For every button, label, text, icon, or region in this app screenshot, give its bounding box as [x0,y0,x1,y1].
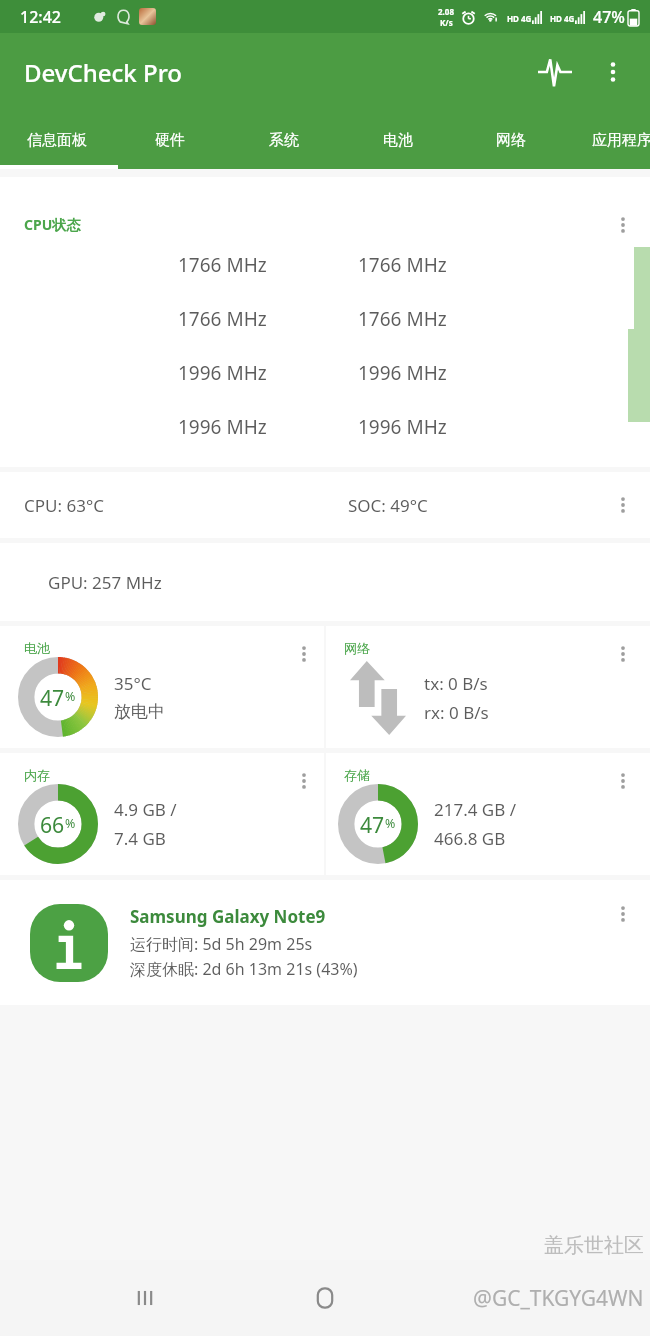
button[interactable]: Home [296,1269,354,1327]
staticText: HD [507,13,519,24]
staticText: 217.4 GB / [434,798,517,821]
staticText: % [65,688,76,705]
staticText: 1996 MHz [358,414,447,440]
button[interactable]: Device options [605,896,641,932]
staticText: 466.8 GB [434,827,506,850]
button[interactable]: 电池 [0,626,324,748]
staticText: 网络 [344,640,370,656]
staticText: 1996 MHz [178,360,267,386]
button[interactable]: Battery options [286,636,322,672]
staticText: 47 [40,683,65,712]
staticText: 运行时间: 5d 5h 29m 25s [130,933,313,955]
button[interactable]: GPU: 257 MHz [0,543,650,621]
staticText: 1766 MHz [178,306,267,332]
button[interactable]: 硬件 [110,111,230,169]
staticText: 4.9 GB / [114,798,177,821]
staticText: 4G [564,13,575,24]
button[interactable]: CPU状态 [0,177,650,467]
staticText: 35°C [114,672,152,695]
staticText: 盖乐世社区 [544,1233,644,1258]
button[interactable]: Memory options [286,763,322,799]
staticText: tx: 0 B/s [424,672,488,695]
staticText: 7.4 GB [114,827,166,850]
staticText: 深度休眠: 2d 6h 13m 21s (43%) [130,958,358,980]
staticText: 内存 [24,767,50,783]
button[interactable]: Monitor [532,49,578,95]
button[interactable]: Storage options [605,763,641,799]
button[interactable]: 应用程序 [562,111,650,169]
button[interactable]: 网络 [451,111,571,169]
staticText: 4G [521,13,532,24]
button[interactable]: 内存 [0,753,324,875]
staticText: 系统 [269,131,299,150]
button[interactable]: CPU options [605,207,641,243]
staticText: 47 [360,810,385,839]
staticText: 1766 MHz [358,252,447,278]
button[interactable]: 网络 [326,626,650,748]
staticText: 66 [40,810,65,839]
staticText: 2.08 [438,6,454,17]
staticText: K/s [440,17,453,28]
button[interactable]: 信息面板 [0,111,117,169]
staticText: 硬件 [155,131,185,150]
staticText: 存储 [344,767,370,783]
staticText: 47% [593,6,625,28]
staticText: % [65,815,76,832]
staticText: @GC_TKGYG4WN [473,1284,644,1313]
button[interactable]: Recent apps [116,1269,174,1327]
staticText: 电池 [24,640,50,656]
button[interactable]: 存储 [326,753,650,875]
staticText: 应用程序 [592,131,650,150]
staticText: 信息面板 [27,131,87,150]
button[interactable]: 电池 [338,111,458,169]
staticText: SOC: 49°C [348,494,428,517]
staticText: 电池 [383,131,413,150]
staticText: % [385,815,396,832]
staticText: 1766 MHz [358,306,447,332]
staticText: GPU: 257 MHz [48,571,162,594]
button[interactable]: CPU: 63°C [0,472,650,538]
staticText: 网络 [496,131,526,150]
staticText: HD [550,13,562,24]
staticText: 12:42 [20,6,61,28]
staticText: CPU状态 [24,215,81,234]
staticText: Samsung Galaxy Note9 [130,905,326,928]
staticText: rx: 0 B/s [424,701,489,724]
staticText: 1996 MHz [178,414,267,440]
button[interactable]: Samsung Galaxy Note9 [0,880,650,1005]
staticText: DevCheck Pro [24,56,182,89]
staticText: 放电中 [114,701,165,722]
button[interactable]: Network options [605,636,641,672]
staticText: 1766 MHz [178,252,267,278]
button[interactable]: More options [590,49,636,95]
button[interactable]: Temperature options [605,487,641,523]
staticText: 1996 MHz [358,360,447,386]
staticText: CPU: 63°C [24,494,104,517]
button[interactable]: 系统 [224,111,344,169]
